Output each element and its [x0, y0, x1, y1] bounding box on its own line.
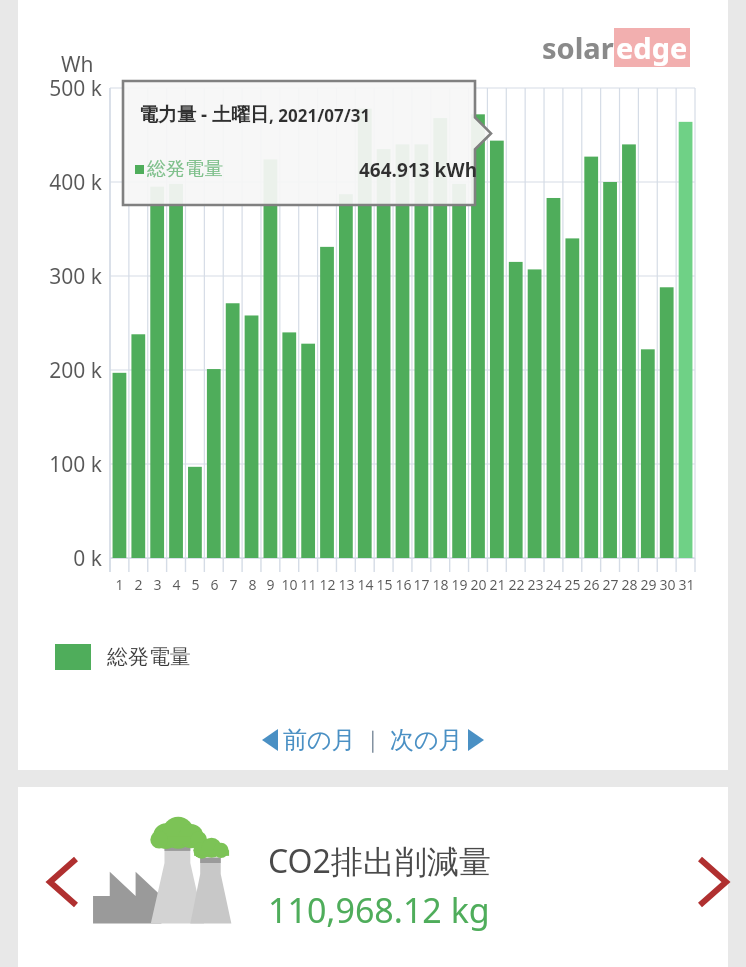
staticText: ｜: [362, 726, 384, 754]
staticText: 20: [470, 575, 487, 594]
staticText: 26: [583, 575, 600, 594]
staticText: 300 k: [49, 262, 102, 291]
staticText: 14: [357, 575, 374, 594]
staticText: 7: [229, 575, 238, 594]
staticText: edge: [616, 28, 688, 67]
staticText: 11: [300, 575, 317, 594]
staticText: 400 k: [49, 168, 102, 197]
staticText: 24: [545, 575, 562, 594]
staticText: 464.913 kWh: [359, 157, 477, 183]
staticText: 500 k: [49, 74, 102, 103]
staticText: 9: [266, 575, 275, 594]
staticText: 22: [508, 575, 525, 594]
button[interactable]: 前の月: [262, 725, 356, 755]
staticText: 100 k: [49, 450, 102, 479]
staticText: 5: [191, 575, 200, 594]
staticText: , 2021/07/31: [269, 104, 371, 127]
staticText: 6: [210, 575, 219, 594]
staticText: 19: [451, 575, 468, 594]
staticText: 30: [659, 575, 676, 594]
staticText: 16: [395, 575, 412, 594]
staticText: 前の月: [283, 725, 356, 755]
staticText: 0 k: [73, 544, 102, 573]
button[interactable]: 次の月: [390, 725, 484, 755]
staticText: 1: [115, 575, 124, 594]
staticText: solar: [542, 28, 614, 67]
staticText: 31: [678, 575, 695, 594]
staticText: 17: [413, 575, 430, 594]
button[interactable]: 総発電量: [55, 644, 191, 670]
staticText: 4: [172, 575, 181, 594]
staticText: 10: [281, 575, 298, 594]
staticText: 次の月: [390, 725, 463, 755]
staticText: 3: [153, 575, 162, 594]
staticText: 15: [376, 575, 393, 594]
staticText: 13: [338, 575, 355, 594]
button[interactable]: Next: [682, 842, 744, 922]
button[interactable]: solar: [542, 28, 690, 67]
staticText: 2: [134, 575, 143, 594]
staticText: 25: [564, 575, 581, 594]
staticText: 21: [489, 575, 506, 594]
staticText: 29: [640, 575, 657, 594]
staticText: 総発電量: [147, 157, 223, 181]
staticText: 28: [621, 575, 638, 594]
staticText: 8: [248, 575, 257, 594]
staticText: 18: [432, 575, 449, 594]
button[interactable]: Previous: [32, 842, 94, 922]
staticText: 12: [319, 575, 336, 594]
staticText: 総発電量: [107, 644, 191, 670]
staticText: 27: [602, 575, 619, 594]
staticText: CO2排出削減量: [268, 839, 491, 883]
staticText: Wh: [61, 50, 94, 79]
staticText: 電力量 - 土曜日: [139, 101, 269, 127]
staticText: 110,968.12 kg: [268, 887, 490, 933]
staticText: 200 k: [49, 356, 102, 385]
staticText: 23: [527, 575, 544, 594]
